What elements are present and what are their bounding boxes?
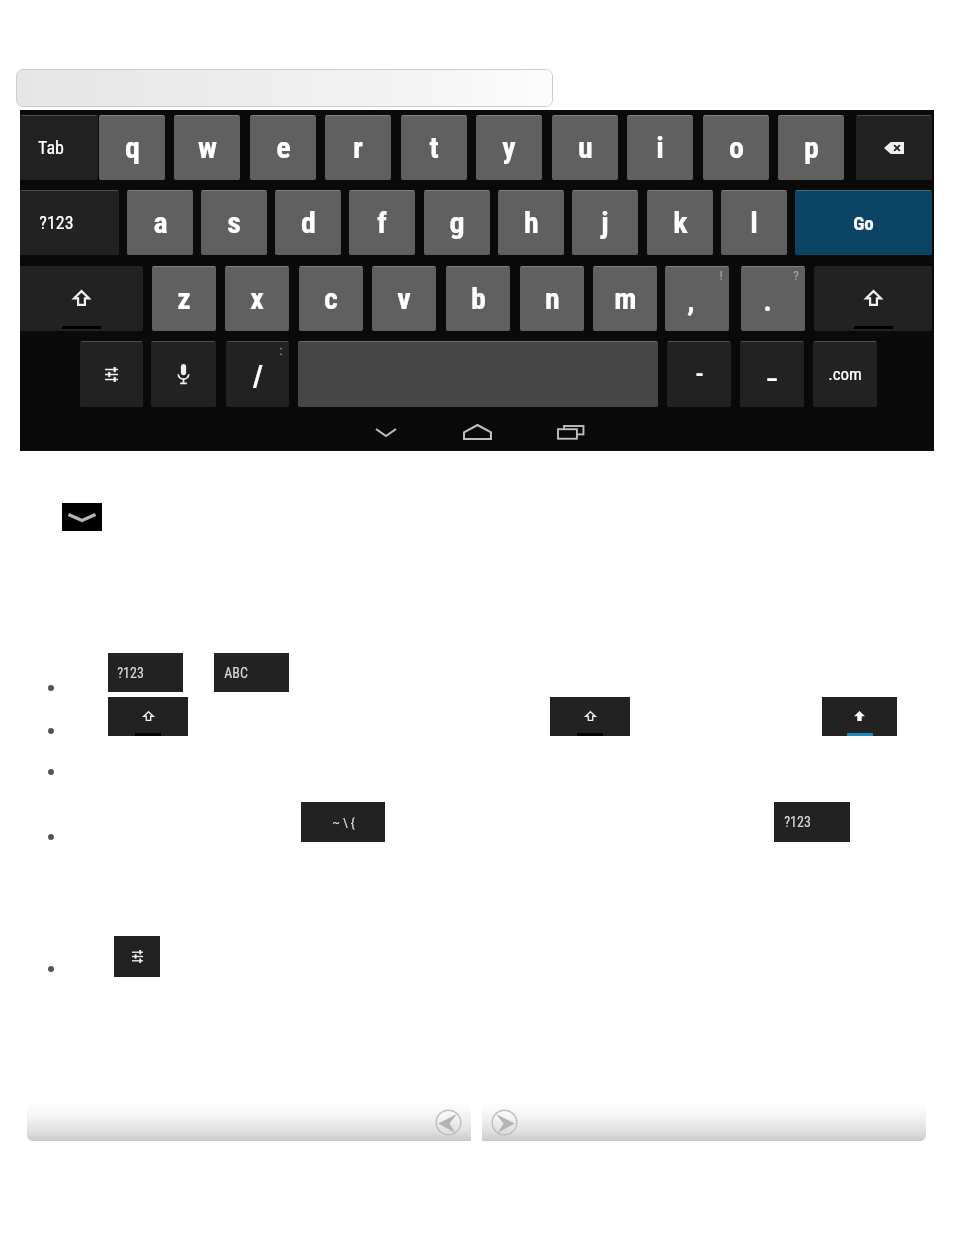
button[interactable]: s xyxy=(201,190,267,255)
button[interactable]: , xyxy=(665,266,729,331)
staticText: e xyxy=(276,130,291,165)
button[interactable]: n xyxy=(520,266,584,331)
button[interactable]: / xyxy=(226,341,289,407)
staticText: Tab xyxy=(38,137,64,158)
staticText: .com xyxy=(828,364,862,384)
staticText: s xyxy=(227,205,241,240)
button[interactable]: ~ \ { xyxy=(301,802,385,842)
button[interactable]: c xyxy=(299,266,363,331)
button[interactable]: e xyxy=(250,115,316,180)
button[interactable]: k xyxy=(647,190,713,255)
button[interactable]: . xyxy=(741,266,805,331)
staticText: , xyxy=(687,283,695,318)
button[interactable]: h xyxy=(498,190,564,255)
button[interactable]: Shift xyxy=(550,697,630,736)
button[interactable]: p xyxy=(778,115,844,180)
staticText: q xyxy=(125,130,140,165)
staticText: n xyxy=(545,281,560,316)
button[interactable] xyxy=(16,69,553,107)
staticText: z xyxy=(177,281,191,316)
button[interactable]: Tab xyxy=(20,115,98,180)
button[interactable]: v xyxy=(372,266,436,331)
staticText: : xyxy=(279,343,283,358)
button[interactable]: g xyxy=(424,190,490,255)
button[interactable]: r xyxy=(325,115,391,180)
staticText: o xyxy=(729,130,744,165)
button[interactable]: Input settings xyxy=(80,341,143,407)
button[interactable]: Voice input xyxy=(151,341,216,407)
button[interactable]: f xyxy=(349,190,415,255)
button[interactable]: _ xyxy=(740,341,804,407)
staticText: l xyxy=(750,205,758,240)
staticText: k xyxy=(673,205,688,240)
staticText: ! xyxy=(719,268,723,283)
staticText: ?123 xyxy=(784,814,811,830)
staticText: p xyxy=(804,130,819,165)
staticText: d xyxy=(301,205,316,240)
button[interactable]: - xyxy=(667,341,731,407)
staticText: Go xyxy=(853,212,874,234)
button[interactable]: Shift xyxy=(108,697,188,736)
button[interactable]: Space xyxy=(298,341,658,407)
button[interactable]: Recent apps xyxy=(544,414,596,450)
staticText: ?123 xyxy=(39,212,74,233)
staticText: m xyxy=(614,281,637,316)
button[interactable]: ABC xyxy=(214,653,289,692)
staticText: w xyxy=(198,130,217,165)
button[interactable]: z xyxy=(152,266,216,331)
button[interactable]: a xyxy=(127,190,193,255)
button[interactable]: ?123 xyxy=(20,190,119,255)
staticText: r xyxy=(353,130,363,165)
staticText: b xyxy=(471,281,486,316)
staticText: f xyxy=(377,205,387,240)
button[interactable]: Input settings xyxy=(114,936,160,977)
staticText: i xyxy=(656,130,664,165)
button[interactable]: l xyxy=(721,190,787,255)
button[interactable]: Shift xyxy=(814,266,932,331)
button[interactable]: d xyxy=(275,190,341,255)
button[interactable]: q xyxy=(99,115,165,180)
staticText: j xyxy=(601,205,609,240)
button[interactable]: i xyxy=(627,115,693,180)
button[interactable]: j xyxy=(572,190,638,255)
staticText: _ xyxy=(767,356,777,384)
button[interactable]: Hide keyboard xyxy=(62,503,102,531)
staticText: c xyxy=(324,281,338,316)
button[interactable]: Hide keyboard xyxy=(360,414,412,450)
button[interactable]: Next page xyxy=(482,1103,926,1141)
button[interactable]: ?123 xyxy=(108,653,183,692)
staticText: y xyxy=(502,130,516,165)
staticText: a xyxy=(153,205,168,240)
button[interactable]: Home xyxy=(451,414,503,450)
button[interactable]: w xyxy=(174,115,240,180)
button[interactable]: b xyxy=(446,266,510,331)
staticText: - xyxy=(695,360,704,388)
staticText: t xyxy=(429,130,439,165)
staticText: ~ \ { xyxy=(332,815,355,830)
button[interactable]: m xyxy=(593,266,657,331)
button[interactable]: x xyxy=(225,266,289,331)
staticText: h xyxy=(524,205,539,240)
button[interactable]: t xyxy=(401,115,467,180)
staticText: ?123 xyxy=(117,665,144,681)
button[interactable]: ?123 xyxy=(774,802,850,842)
button[interactable]: Shift xyxy=(822,697,897,736)
staticText: u xyxy=(578,130,593,165)
staticText: ABC xyxy=(224,665,248,681)
button[interactable]: Shift xyxy=(20,266,143,331)
button[interactable]: o xyxy=(703,115,769,180)
button[interactable]: Backspace xyxy=(856,115,932,180)
staticText: x xyxy=(250,281,264,316)
staticText: v xyxy=(397,281,411,316)
button[interactable]: Go xyxy=(795,190,932,255)
staticText: ? xyxy=(793,268,799,283)
button[interactable]: .com xyxy=(813,341,877,407)
staticText: / xyxy=(253,358,263,393)
staticText: g xyxy=(449,205,465,240)
button[interactable]: y xyxy=(476,115,542,180)
button[interactable]: u xyxy=(552,115,618,180)
button[interactable]: Previous page xyxy=(27,1103,471,1141)
staticText: . xyxy=(763,283,772,318)
